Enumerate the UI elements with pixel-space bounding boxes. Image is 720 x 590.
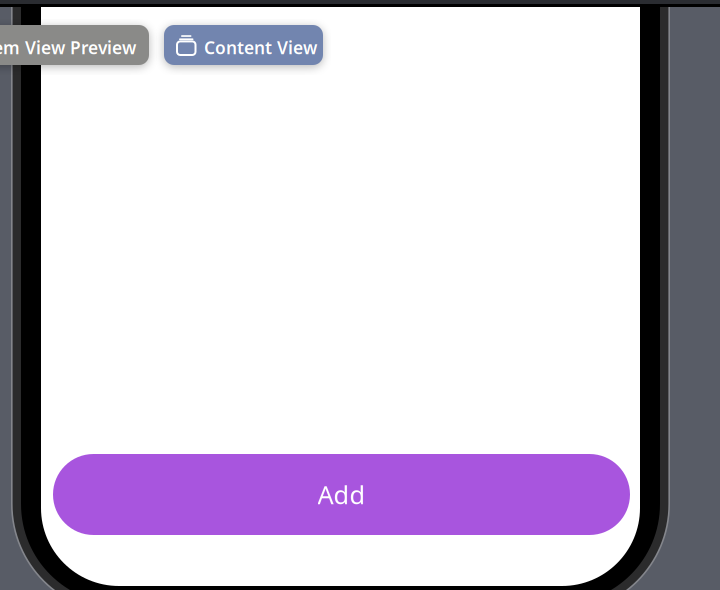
button[interactable]: Content View (164, 25, 323, 65)
button[interactable]: em View Preview (0, 25, 149, 65)
staticText: em View Preview (0, 36, 136, 59)
staticText: Content View (204, 36, 317, 59)
staticText: Add (317, 478, 365, 511)
button[interactable]: Add (53, 454, 630, 535)
